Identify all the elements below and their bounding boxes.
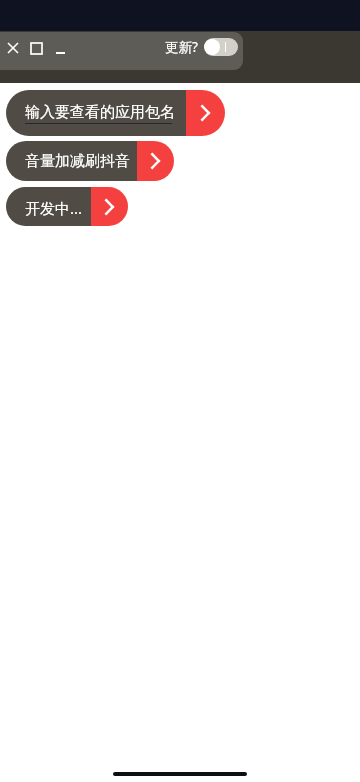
button[interactable]: 更新? — [163, 32, 241, 62]
button[interactable]: Minimize — [48, 36, 72, 60]
button[interactable]: Maximize — [24, 36, 48, 60]
staticText: 开发中... — [25, 198, 83, 218]
staticText: 输入要查看的应用包名 — [25, 103, 175, 122]
staticText: 音量加减刷抖音 — [25, 152, 130, 171]
button[interactable]: 输入要查看的应用包名 — [6, 90, 225, 136]
button[interactable]: Close — [1, 36, 25, 60]
other: Go — [186, 90, 225, 136]
other: Go — [137, 141, 174, 181]
staticText: 更新? — [165, 38, 198, 56]
other: Go — [91, 187, 128, 226]
button[interactable]: 开发中... — [6, 187, 128, 226]
button[interactable]: 音量加减刷抖音 — [6, 141, 174, 181]
